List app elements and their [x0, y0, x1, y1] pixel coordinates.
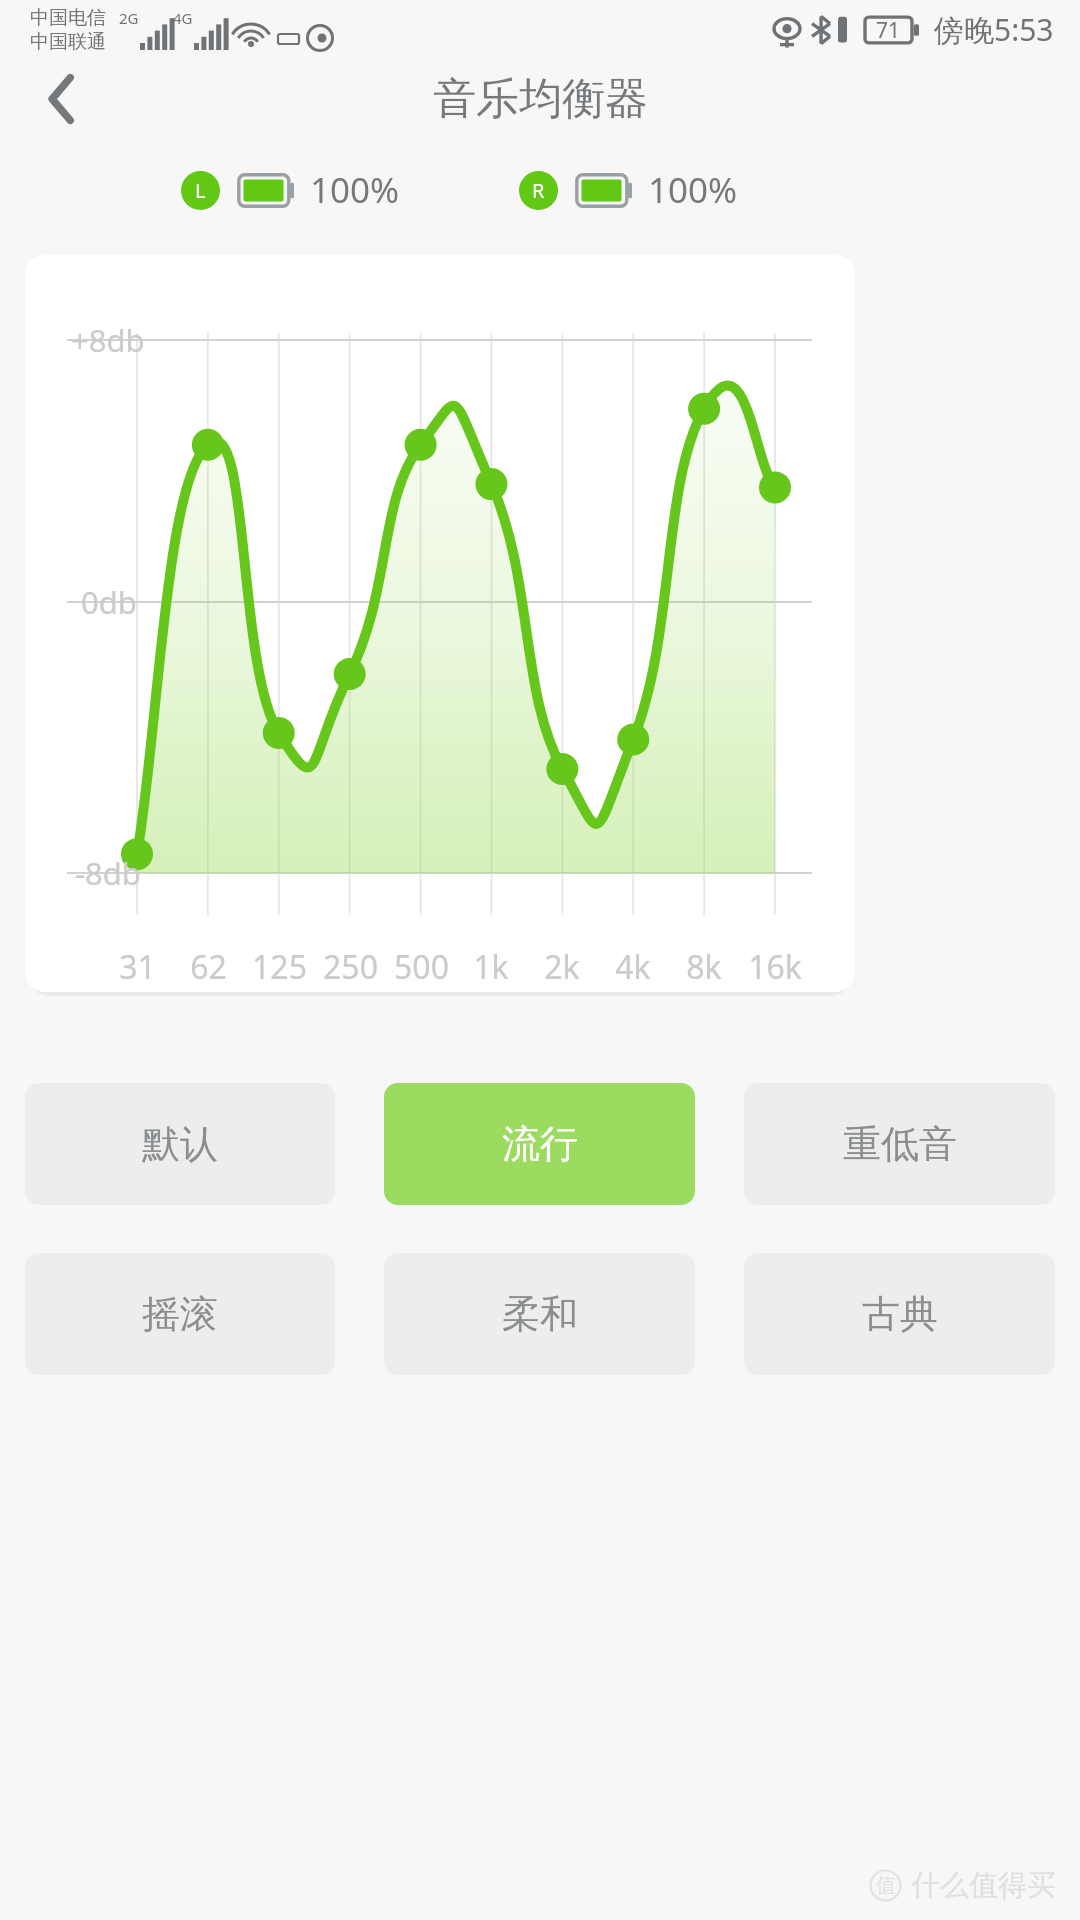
staticText: 中国联通 — [30, 30, 106, 54]
staticText: 傍晚5:53 — [934, 9, 1054, 50]
staticText: 16k — [748, 945, 802, 989]
staticText: -8db — [75, 852, 141, 894]
staticText: 古典 — [862, 1290, 938, 1338]
button[interactable]: 流行 — [384, 1083, 695, 1205]
button[interactable]: 柔和 — [384, 1253, 695, 1375]
staticText: 500 — [394, 945, 449, 989]
staticText: 默认 — [142, 1120, 218, 1168]
staticText: 2G — [119, 8, 139, 28]
staticText: 什么值得买 — [911, 1867, 1056, 1904]
staticText: 100% — [648, 166, 738, 214]
button[interactable]: 古典 — [744, 1253, 1055, 1375]
staticText: 4G — [173, 8, 193, 28]
staticText: 62 — [190, 945, 227, 989]
staticText: L — [195, 177, 206, 204]
button[interactable]: 默认 — [25, 1083, 335, 1205]
staticText: 2k — [544, 945, 580, 989]
staticText: 摇滚 — [142, 1290, 218, 1338]
button[interactable]: Back — [20, 56, 106, 142]
staticText: 100% — [310, 166, 400, 214]
staticText: 流行 — [502, 1120, 578, 1168]
button[interactable]: L — [181, 166, 400, 214]
staticText: 重低音 — [843, 1120, 957, 1168]
staticText: 值 — [876, 1873, 896, 1898]
staticText: 1k — [473, 945, 509, 989]
staticText: 柔和 — [502, 1290, 578, 1338]
staticText: 71 — [876, 16, 901, 45]
button[interactable]: 重低音 — [744, 1083, 1055, 1205]
staticText: 31 — [119, 945, 156, 989]
staticText: 中国电信 — [30, 6, 106, 30]
staticText: 4k — [615, 945, 651, 989]
staticText: R — [532, 177, 545, 204]
staticText: 8k — [686, 945, 722, 989]
staticText: +8db — [71, 319, 145, 361]
button[interactable]: R — [519, 166, 738, 214]
button[interactable]: 摇滚 — [25, 1253, 335, 1375]
staticText: 125 — [252, 945, 307, 989]
staticText: 0db — [81, 581, 137, 623]
staticText: 250 — [323, 945, 378, 989]
staticText: 音乐均衡器 — [433, 72, 648, 126]
